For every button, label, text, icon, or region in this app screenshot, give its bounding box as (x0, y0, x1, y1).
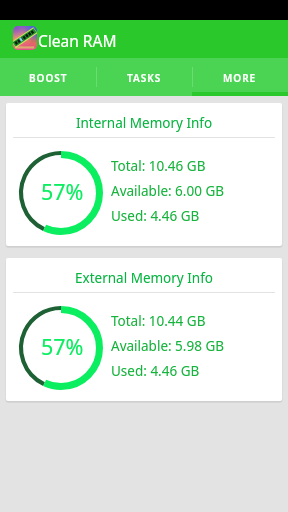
staticText: Total: 10.46 GB (111, 157, 206, 175)
staticText: MORE (223, 71, 257, 85)
staticText: Internal Memory Info (6, 114, 282, 132)
button[interactable]: TASKS (96, 58, 192, 96)
staticText: BOOST (29, 71, 68, 85)
other: Clean RAM app icon (13, 26, 37, 50)
button[interactable]: External Memory Info (6, 258, 282, 401)
staticText: TASKS (127, 71, 162, 85)
staticText: External Memory Info (6, 269, 282, 287)
staticText: 57% (41, 332, 84, 361)
staticText: Used: 4.46 GB (111, 362, 200, 380)
staticText: Clean RAM (38, 30, 117, 51)
staticText: Available: 5.98 GB (111, 337, 225, 355)
staticText: Available: 6.00 GB (111, 182, 225, 200)
button[interactable]: Internal Memory Info (6, 103, 282, 246)
staticText: 57% (41, 177, 84, 206)
staticText: Total: 10.44 GB (111, 312, 206, 330)
button[interactable]: MORE (192, 58, 288, 96)
staticText: Used: 4.46 GB (111, 207, 200, 225)
button[interactable]: BOOST (0, 58, 96, 96)
